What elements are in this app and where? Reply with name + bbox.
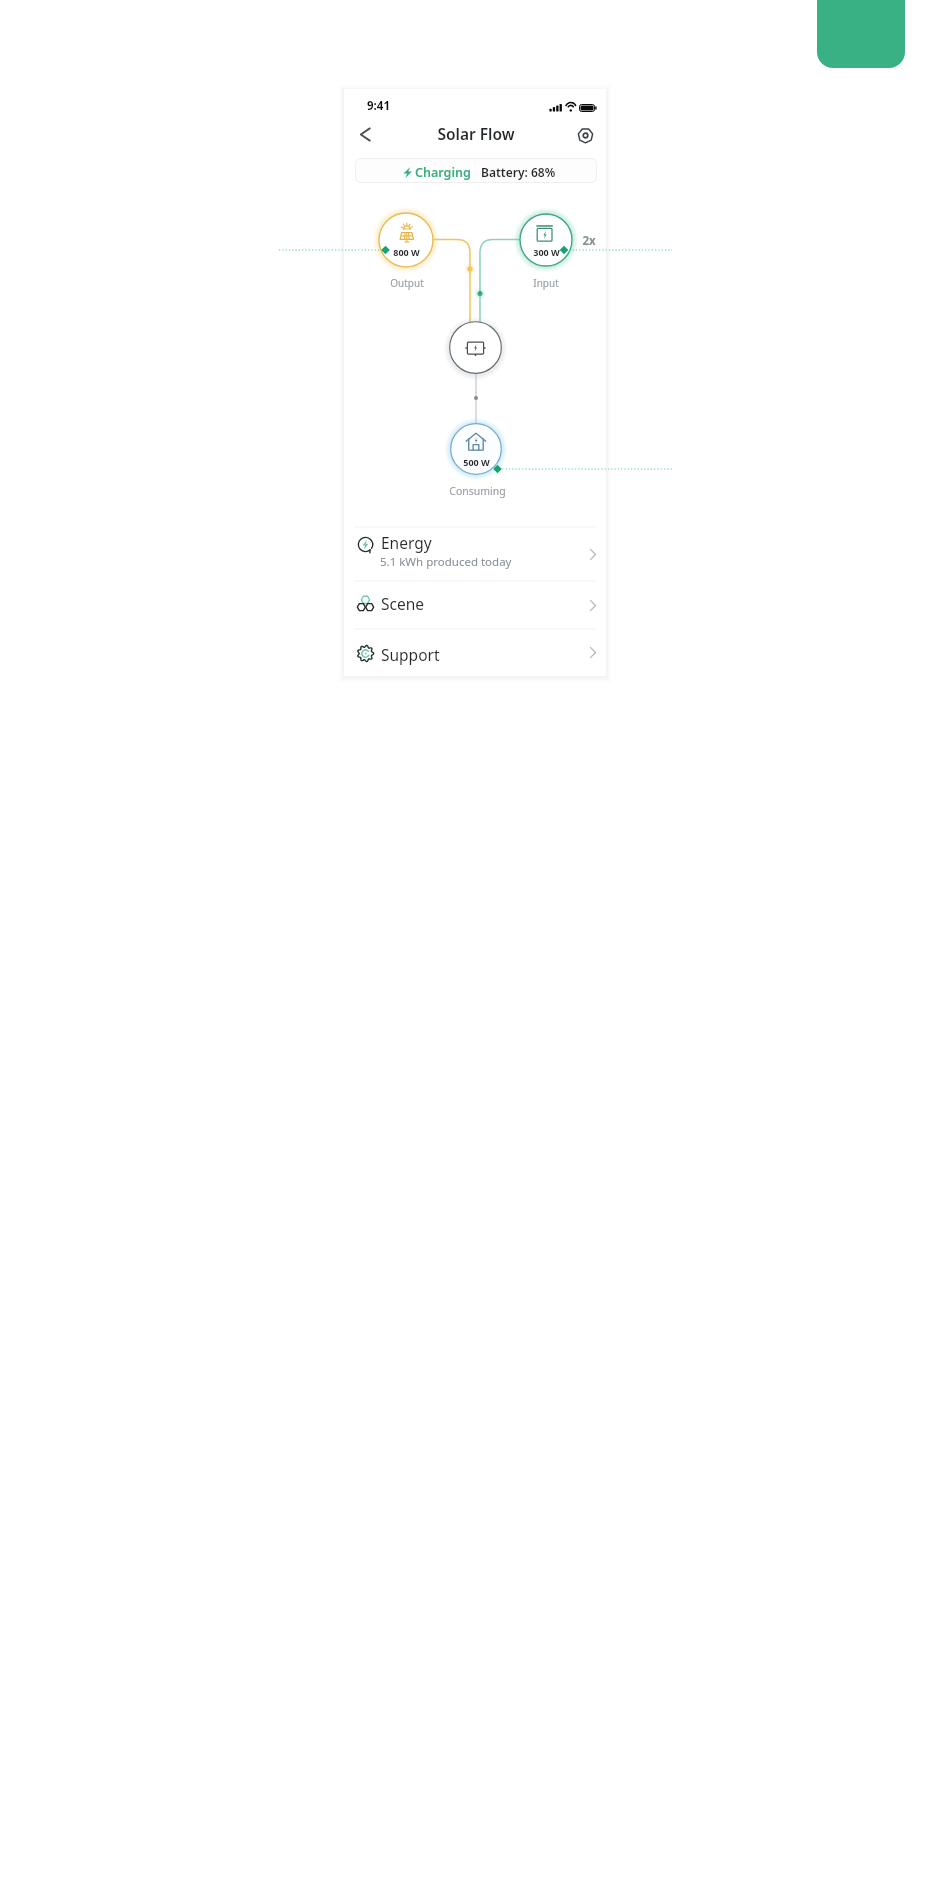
staticText: Scene bbox=[381, 593, 425, 614]
button[interactable] bbox=[355, 158, 597, 183]
staticText: 5.1 kWh produced today bbox=[380, 554, 512, 570]
button[interactable]: Back bbox=[353, 122, 377, 146]
staticText: Energy bbox=[381, 532, 432, 553]
button[interactable] bbox=[344, 629, 606, 676]
staticText: 9:41 bbox=[367, 98, 390, 114]
button[interactable]: Settings bbox=[573, 123, 597, 147]
staticText: 300 W bbox=[533, 246, 560, 258]
staticText: Input bbox=[533, 276, 559, 290]
staticText: Solar Flow bbox=[437, 123, 515, 144]
staticText: 2x bbox=[582, 233, 596, 249]
staticText: Consuming bbox=[449, 484, 506, 498]
staticText: Output bbox=[390, 276, 424, 290]
button[interactable] bbox=[344, 527, 606, 581]
staticText: 800 W bbox=[393, 246, 420, 258]
staticText: 500 W bbox=[463, 456, 490, 468]
staticText: Battery: 68% bbox=[481, 164, 556, 180]
staticText: Support bbox=[381, 644, 440, 665]
staticText: Charging bbox=[415, 164, 471, 181]
button[interactable] bbox=[344, 581, 606, 629]
